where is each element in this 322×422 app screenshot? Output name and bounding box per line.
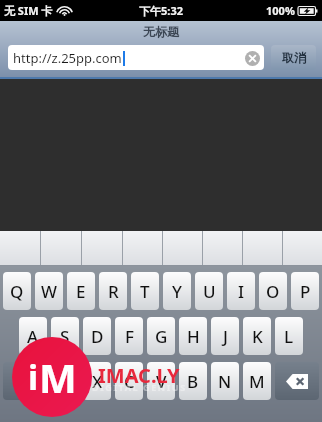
button[interactable]: U <box>195 272 223 310</box>
button[interactable]: W <box>35 272 63 310</box>
staticText: W <box>41 280 57 303</box>
button[interactable]: V <box>147 362 175 400</box>
button[interactable]: Y <box>163 272 191 310</box>
button[interactable]: B <box>179 362 207 400</box>
button[interactable]: A <box>19 317 47 355</box>
button[interactable]: K <box>243 317 271 355</box>
staticText: 无标题 <box>143 24 179 39</box>
staticText: T <box>140 280 150 303</box>
button[interactable] <box>41 231 81 266</box>
button[interactable] <box>283 231 322 266</box>
staticText: B <box>187 370 199 393</box>
button[interactable]: Delete <box>275 362 319 400</box>
staticText: F <box>125 325 134 348</box>
staticText: IMAC.LY <box>98 362 180 389</box>
button[interactable]: J <box>211 317 239 355</box>
button[interactable] <box>243 231 282 266</box>
button[interactable]: O <box>259 272 287 310</box>
button[interactable]: I <box>227 272 255 310</box>
staticText: 取消 <box>282 50 306 65</box>
button[interactable] <box>82 231 122 266</box>
staticText: U <box>203 280 216 303</box>
button[interactable]: R <box>99 272 127 310</box>
button[interactable]: Shift <box>3 362 47 400</box>
staticText: K <box>252 325 263 348</box>
button[interactable] <box>123 231 162 266</box>
staticText: V <box>156 370 167 393</box>
button[interactable]: L <box>275 317 303 355</box>
staticText: G <box>155 325 168 348</box>
staticText: Z <box>60 370 70 393</box>
button[interactable]: P <box>291 272 319 310</box>
staticText: DIGITAL GENIUS <box>92 381 187 393</box>
button[interactable]: N <box>211 362 239 400</box>
staticText: A <box>27 325 39 348</box>
button[interactable]: 取消 <box>271 45 316 70</box>
staticText: Y <box>172 280 182 303</box>
staticText: I <box>238 280 245 303</box>
button[interactable]: D <box>83 317 111 355</box>
button[interactable]: F <box>115 317 143 355</box>
button[interactable] <box>0 231 40 266</box>
staticText: N <box>218 370 232 393</box>
staticText: S <box>60 325 70 348</box>
staticText: i <box>28 354 39 400</box>
staticText: 下午5:32 <box>139 3 183 18</box>
staticText: C <box>124 370 135 393</box>
staticText: R <box>108 280 119 303</box>
button[interactable]: E <box>67 272 95 310</box>
button[interactable]: C <box>115 362 143 400</box>
button[interactable]: G <box>147 317 175 355</box>
staticText: Q <box>10 280 24 303</box>
button[interactable]: T <box>131 272 159 310</box>
staticText: O <box>266 280 280 303</box>
button[interactable] <box>203 231 242 266</box>
staticText: J <box>223 325 228 348</box>
staticText: H <box>187 325 200 348</box>
staticText: http://z.25pp.com <box>13 49 122 67</box>
button[interactable]: http://z.25pp.com <box>8 45 264 70</box>
button[interactable]: X <box>83 362 111 400</box>
staticText: 无 SIM 卡 <box>4 3 53 18</box>
button[interactable]: Clear text <box>245 51 260 66</box>
button[interactable]: Z <box>51 362 79 400</box>
staticText: X <box>92 370 103 393</box>
staticText: M <box>39 350 77 404</box>
staticText: E <box>76 280 86 303</box>
staticText: M <box>249 370 265 393</box>
staticText: D <box>91 325 104 348</box>
button[interactable] <box>163 231 202 266</box>
staticText: 100% <box>266 3 295 18</box>
button[interactable]: M <box>243 362 271 400</box>
button[interactable]: S <box>51 317 79 355</box>
button[interactable]: Q <box>3 272 31 310</box>
staticText: L <box>284 325 294 348</box>
staticText: P <box>300 280 311 303</box>
button[interactable]: H <box>179 317 207 355</box>
